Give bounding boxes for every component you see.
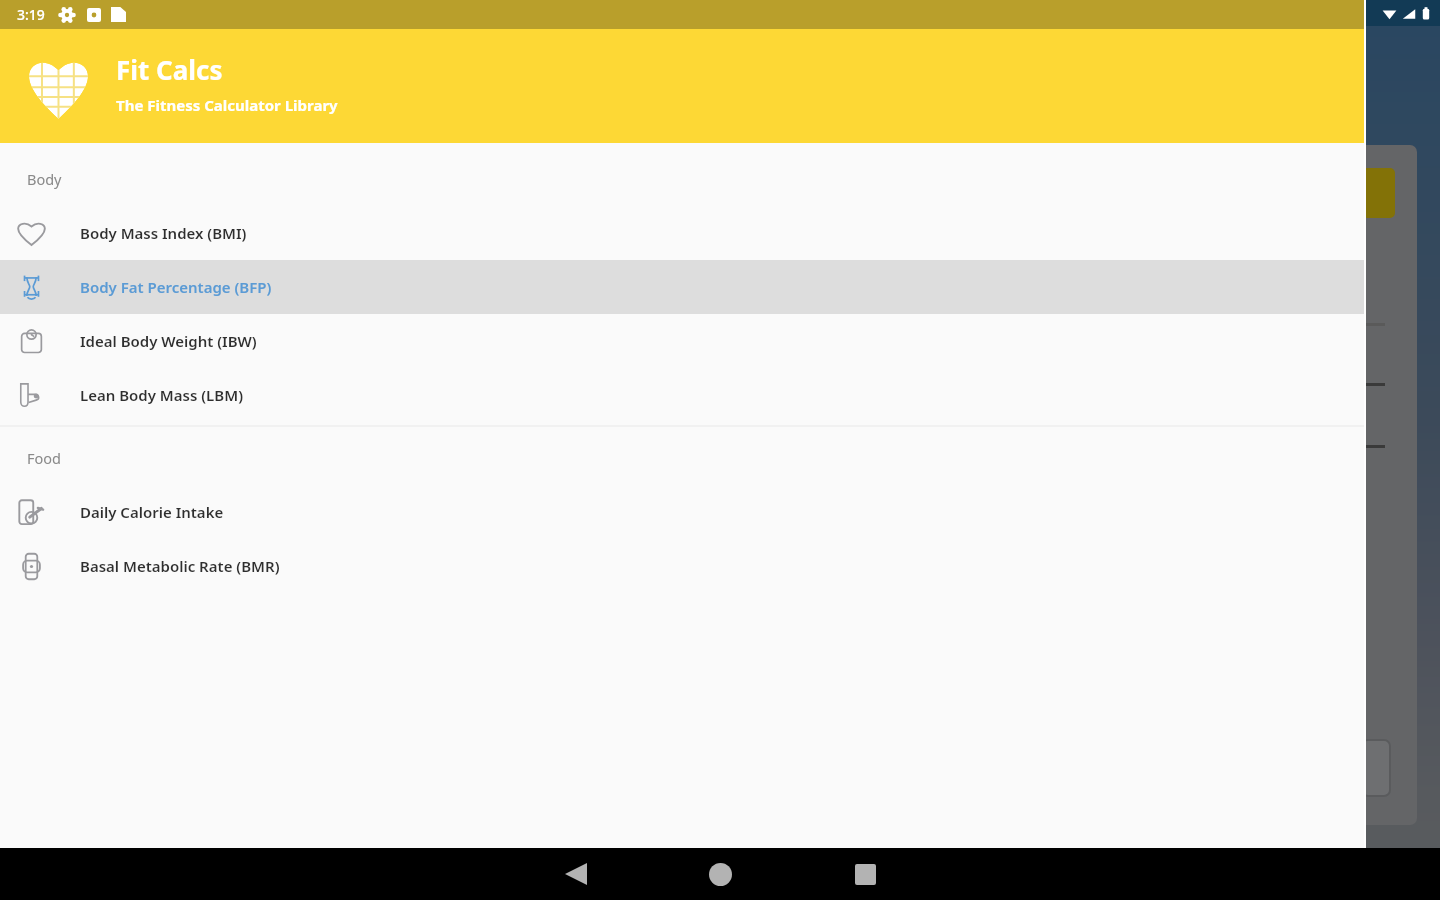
staticText: Ideal Body Weight (IBW)	[80, 331, 257, 351]
button[interactable]: Daily Calorie Intake	[0, 485, 1366, 539]
staticText: Fit Calcs	[116, 52, 223, 87]
button[interactable]: Back	[504, 848, 648, 900]
staticText: Body Fat Percentage (BFP)	[80, 277, 272, 297]
button[interactable]: Body Mass Index (BMI)	[0, 206, 1366, 260]
button[interactable]	[1362, 168, 1395, 218]
staticText: 3:19	[17, 5, 45, 24]
staticText: Body Mass Index (BMI)	[80, 223, 247, 243]
button[interactable]: Ideal Body Weight (IBW)	[0, 314, 1366, 368]
staticText: Basal Metabolic Rate (BMR)	[80, 556, 280, 576]
staticText: Daily Calorie Intake	[80, 502, 224, 522]
staticText: Food	[27, 448, 61, 468]
button[interactable]: Lean Body Mass (LBM)	[0, 368, 1366, 422]
button[interactable]: Recents	[793, 848, 937, 900]
staticText: The Fitness Calculator Library	[116, 95, 338, 115]
button[interactable]: Body Fat Percentage (BFP)	[0, 260, 1366, 314]
staticText: Lean Body Mass (LBM)	[80, 385, 243, 405]
button[interactable]: Basal Metabolic Rate (BMR)	[0, 539, 1366, 593]
button[interactable]: Home	[648, 848, 792, 900]
staticText: Body	[27, 169, 62, 189]
